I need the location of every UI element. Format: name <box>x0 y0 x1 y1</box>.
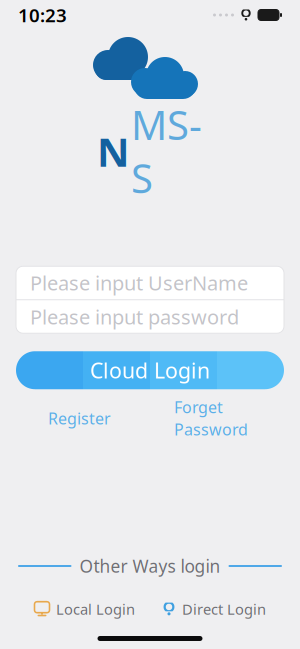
staticText: Cloud Login <box>90 356 210 384</box>
staticText: MSS <box>131 98 202 204</box>
staticText: Other Ways login <box>79 554 220 577</box>
button[interactable]: Cloud Login <box>16 351 284 389</box>
button[interactable]: Direct Login <box>162 599 266 619</box>
staticText: MSS <box>130 98 203 204</box>
staticText: Register <box>48 408 111 429</box>
staticText: Please input password <box>30 303 239 330</box>
staticText: Please input UserName <box>30 269 248 296</box>
staticText: Forget <box>174 396 223 418</box>
button[interactable]: Forget <box>174 396 248 440</box>
button[interactable]: Please input password <box>16 300 284 333</box>
staticText: 10:23 <box>18 3 67 27</box>
staticText: Local Login <box>56 599 135 619</box>
button[interactable]: Local Login <box>34 599 135 619</box>
staticText: Direct Login <box>182 599 266 619</box>
staticText: Password <box>174 419 248 440</box>
button[interactable]: Register <box>48 408 111 429</box>
staticText: N <box>97 125 130 178</box>
button[interactable]: Please input UserName <box>16 266 284 299</box>
